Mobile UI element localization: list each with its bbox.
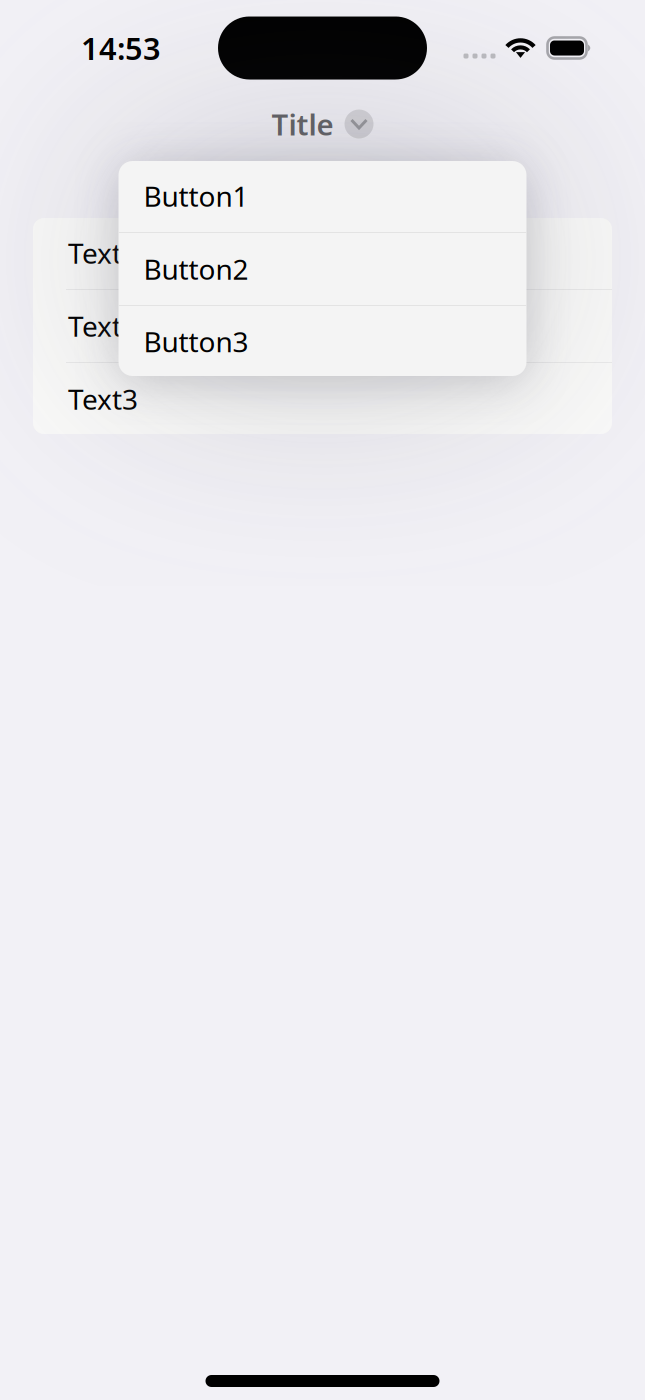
button[interactable]: Text2 [33, 290, 612, 363]
staticText: Button3 [143, 323, 248, 360]
menuItem[interactable]: Button3 [118, 306, 526, 377]
staticText: Text1 [68, 234, 138, 272]
menu [118, 160, 526, 377]
staticText: Title [271, 104, 333, 143]
menuItem[interactable]: Button2 [118, 233, 526, 306]
button[interactable]: Text3 [33, 363, 612, 435]
button[interactable]: Text1 [33, 217, 612, 290]
staticText: Text3 [68, 380, 138, 418]
staticText: Text2 [68, 307, 138, 345]
button[interactable]: Title [271, 108, 373, 140]
staticText: 14:53 [81, 28, 161, 68]
staticText: Button1 [143, 177, 248, 215]
menuItem[interactable]: Button1 [118, 160, 526, 233]
staticText: Button2 [143, 250, 248, 288]
